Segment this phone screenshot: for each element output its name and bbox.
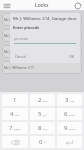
button[interactable]: 7 [2, 122, 28, 134]
staticText: 1 [13, 96, 17, 104]
staticText: 3 [65, 96, 69, 104]
button[interactable]: Mr J. Williams: 217 [2, 61, 82, 74]
staticText: Mr J. Williams: 214, Garage door [13, 16, 77, 22]
staticText: 5 [38, 110, 42, 118]
button[interactable]: 2 [30, 94, 55, 106]
staticText: GHI [15, 113, 20, 116]
staticText: 8 [38, 124, 42, 132]
staticText: TUV [43, 127, 48, 130]
staticText: pincode [14, 36, 29, 41]
button[interactable]: 5 [30, 108, 55, 120]
staticText: 6 [64, 110, 68, 118]
staticText: WXYZ [69, 127, 76, 130]
staticText: + [44, 140, 46, 144]
button[interactable]: 8 [30, 122, 55, 134]
button[interactable]: 3 [57, 94, 82, 106]
staticText: Mr J. Williams: 214 [4, 17, 34, 22]
button[interactable]: Mr J. Williams: 215 [2, 29, 82, 42]
staticText: 0 [39, 138, 43, 146]
button[interactable]: OK [67, 53, 77, 60]
staticText: Mr J. Williams: 215 [4, 33, 34, 38]
button[interactable]: Mr J. Williams: 216 [2, 45, 82, 58]
button[interactable]: 9 [57, 122, 82, 134]
staticText: 2 [38, 96, 42, 104]
staticText: PQRS [14, 127, 21, 130]
staticText: ABC [43, 99, 48, 102]
staticText: 9 [64, 124, 68, 132]
button[interactable]: Cancel [13, 53, 29, 60]
staticText: Mr J. Williams: 216 [4, 49, 34, 54]
staticText: Mr J. Williams: 217 [4, 65, 34, 70]
button[interactable]: Open navigation menu [2, 1, 11, 10]
button[interactable]: Mr J. Williams: 214 [2, 13, 82, 26]
staticText: Enter pincode [13, 25, 40, 30]
button[interactable]: 6 [57, 108, 82, 120]
staticText: 7 [9, 124, 13, 132]
button[interactable]: 4 [2, 108, 28, 120]
staticText: DEF [70, 99, 75, 102]
staticText: JKL [43, 113, 47, 116]
staticText: MNO [69, 113, 75, 116]
staticText: OK [69, 54, 75, 59]
button[interactable]: Refresh [73, 1, 82, 10]
button[interactable]: Enter [57, 136, 82, 148]
staticText: 4 [10, 110, 14, 118]
button[interactable]: 1 [2, 94, 28, 106]
staticText: Cancel [15, 54, 27, 59]
staticText: Locks [35, 2, 49, 9]
button[interactable]: 0 [30, 136, 55, 148]
button[interactable]: Backspace [2, 136, 28, 148]
button[interactable]: pincode [14, 36, 76, 44]
